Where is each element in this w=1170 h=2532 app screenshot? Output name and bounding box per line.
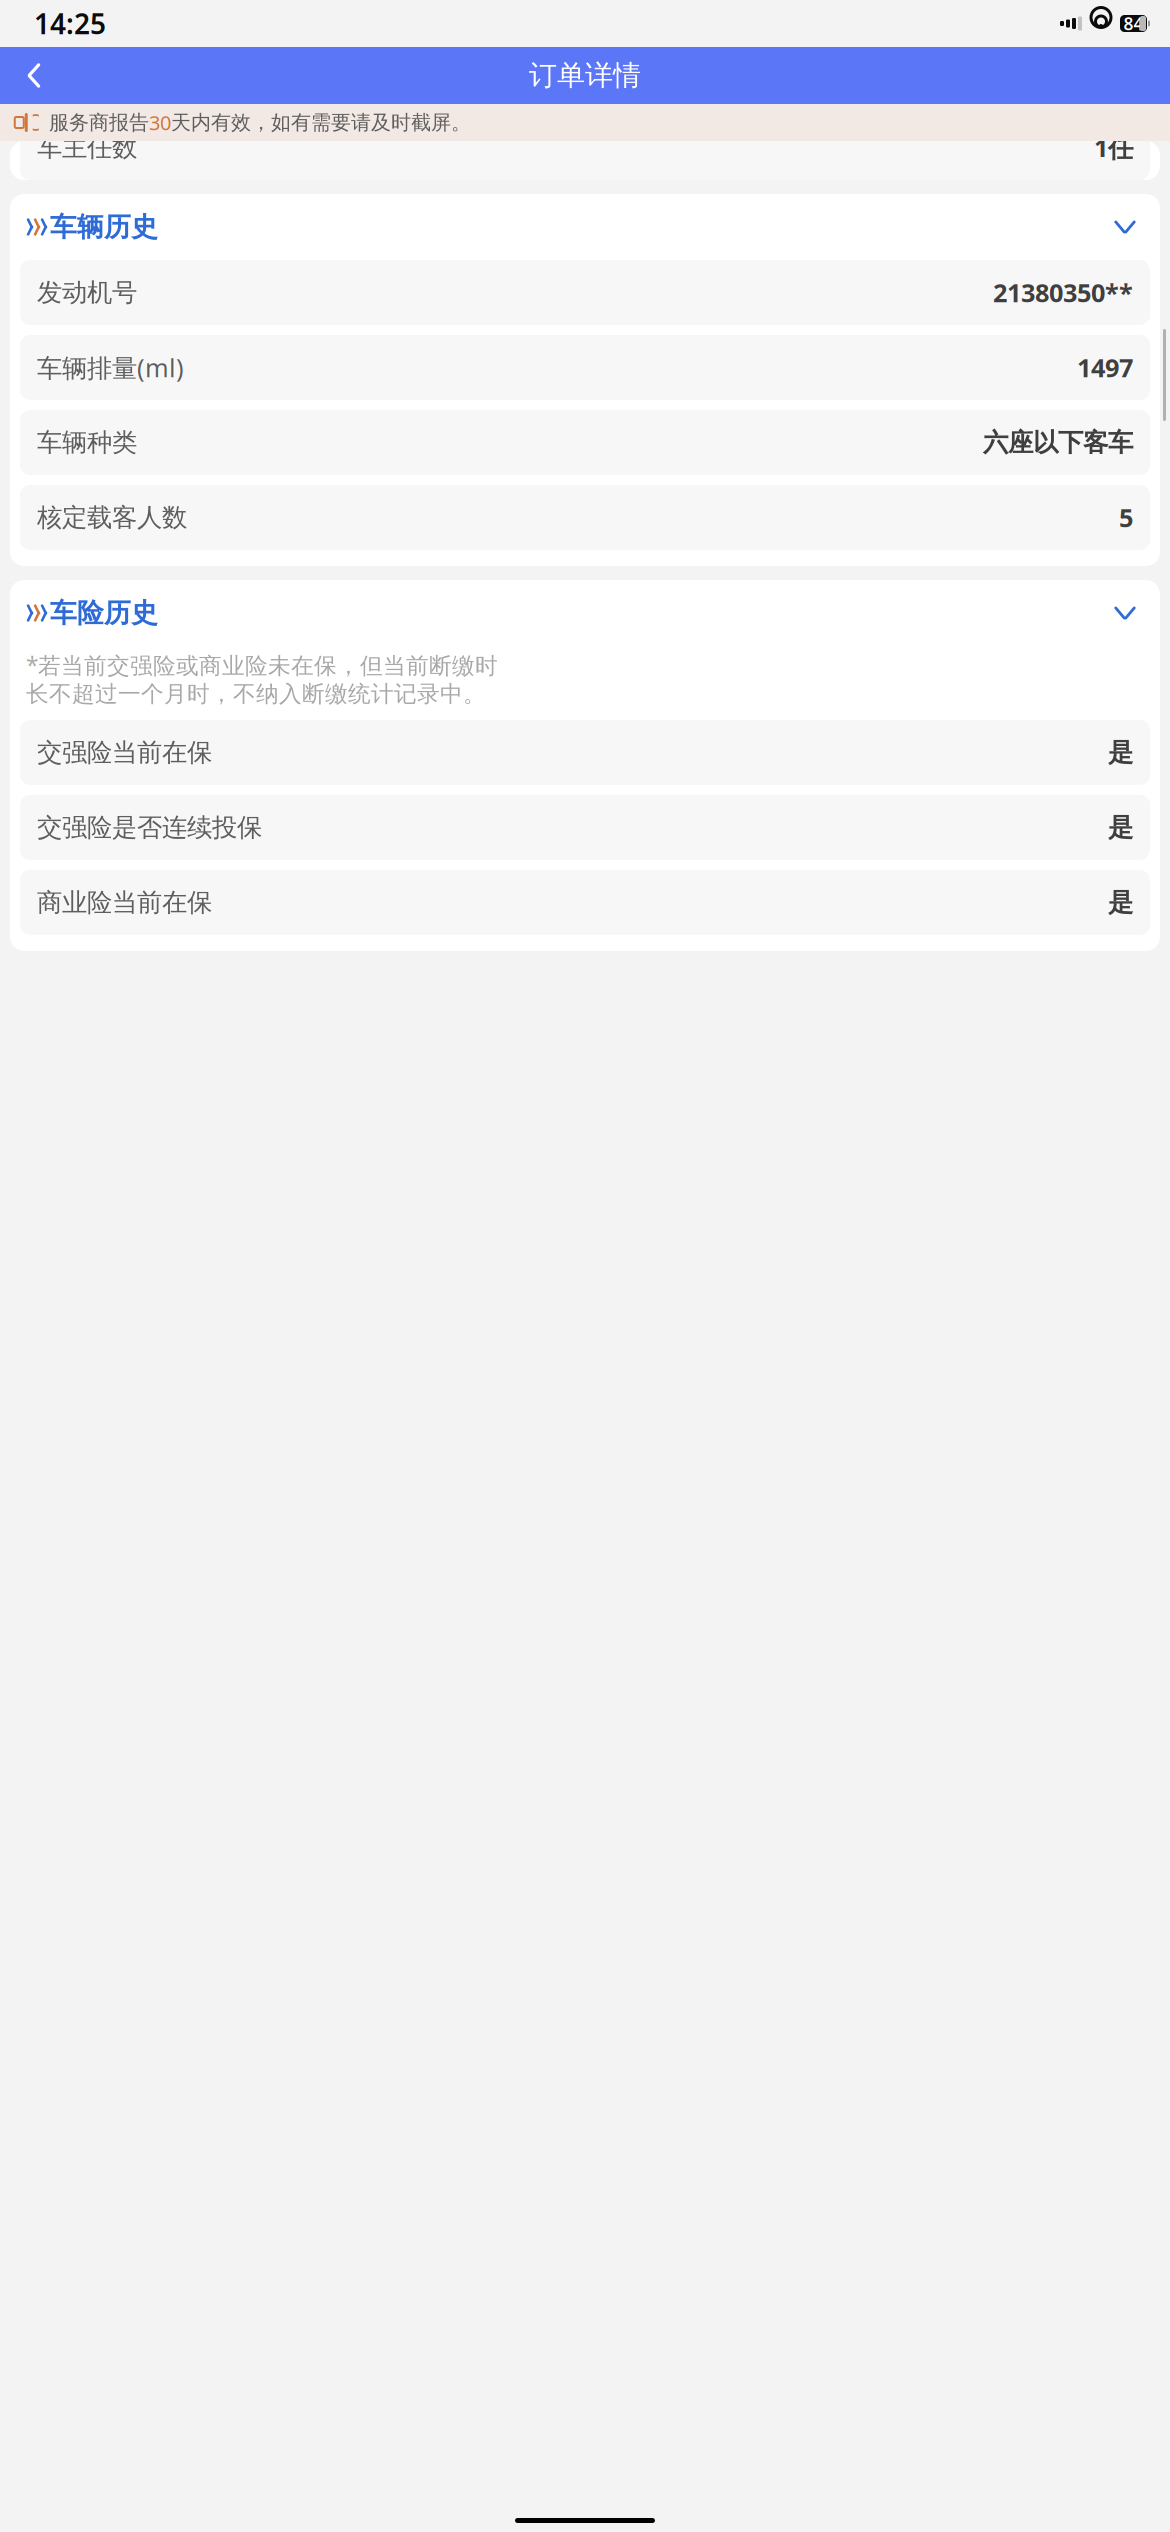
staticText: 交强险是否连续投保 [37, 812, 262, 843]
staticText: 是 [1108, 812, 1133, 843]
staticText: 发动机号 [37, 277, 137, 308]
staticText: 核定载客人数 [37, 502, 187, 533]
staticText: 车辆历史 [50, 211, 158, 243]
staticText: 六座以下客车 [983, 427, 1133, 458]
button[interactable]: 车险历史 [20, 580, 1150, 646]
staticText: 交强险当前在保 [37, 737, 212, 768]
staticText: 30 [149, 109, 171, 136]
staticText: 5 [1119, 501, 1133, 534]
staticText: 车主任数 [37, 132, 137, 163]
staticText: 服务商报告 [49, 110, 149, 135]
staticText: 车险历史 [50, 597, 158, 629]
staticText: 车辆排量(ml) [37, 351, 184, 384]
staticText: *若当前交强险或商业险未在保，但当前断缴时 长不超过一个月时，不纳入断缴统计记录… [26, 650, 498, 708]
staticText: 是 [1108, 737, 1133, 768]
staticText: 是 [1108, 887, 1133, 918]
staticText: 订单详情 [529, 58, 641, 93]
staticText: 1497 [1077, 351, 1133, 384]
staticText: 车辆种类 [37, 427, 137, 458]
staticText: 商业险当前在保 [37, 887, 212, 918]
staticText: 14:25 [34, 5, 106, 42]
button[interactable]: 返回 [8, 49, 60, 101]
staticText: 1任 [1094, 131, 1133, 164]
staticText: 84 [1123, 12, 1143, 35]
staticText: 天内有效，如有需要请及时截屏。 [171, 110, 471, 135]
button[interactable]: 车辆历史 [20, 194, 1150, 260]
staticText: 21380350** [993, 276, 1133, 309]
